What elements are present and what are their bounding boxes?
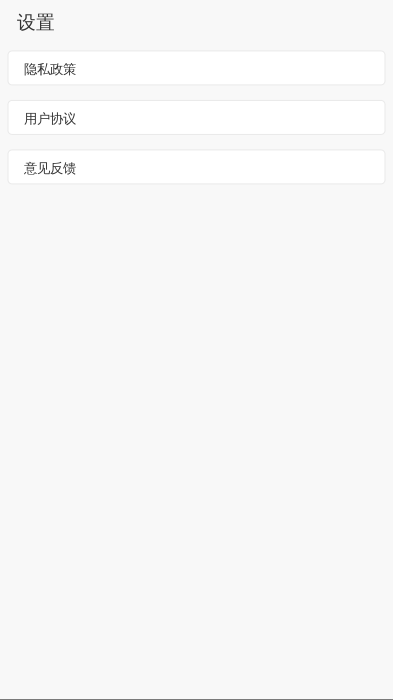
staticText: 隐私政策 <box>24 61 76 78</box>
staticText: 设置 <box>17 11 55 34</box>
button[interactable]: 意见反馈 <box>8 150 385 184</box>
button[interactable]: 隐私政策 <box>8 51 385 85</box>
staticText: 意见反馈 <box>24 160 76 177</box>
button[interactable]: 用户协议 <box>8 100 385 134</box>
staticText: 用户协议 <box>24 111 76 127</box>
